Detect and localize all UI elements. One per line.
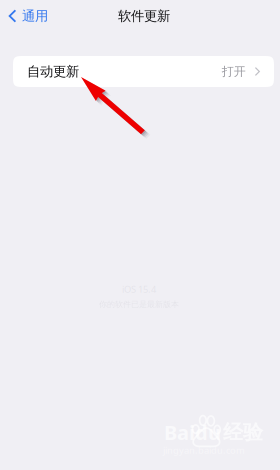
staticText: 经验 [223,420,263,445]
staticText: Baidu [164,419,221,446]
staticText: 软件更新 [118,8,170,24]
staticText: 通用 [22,8,48,24]
staticText: 自动更新 [27,63,79,80]
button[interactable]: 通用 [0,0,60,32]
staticText: 打开 [222,64,246,79]
staticText: iOS 15.4 [122,283,156,295]
button[interactable]: 自动更新 [13,56,274,87]
